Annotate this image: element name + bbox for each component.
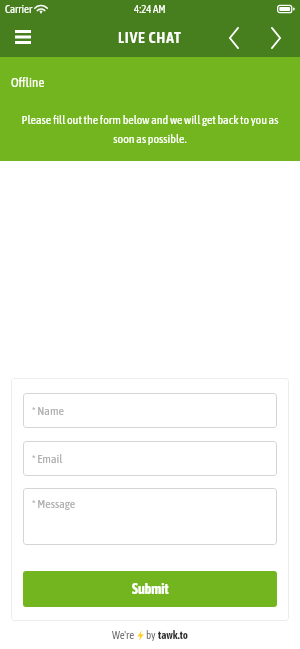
staticText: Carrier	[5, 3, 33, 16]
button[interactable]: * Email	[23, 441, 277, 476]
staticText: Submit	[132, 581, 169, 597]
staticText: * Name	[32, 404, 64, 418]
button[interactable]: Submit	[23, 571, 277, 607]
staticText: Please fill out the form below and we wi…	[16, 113, 284, 145]
staticText: Offline	[11, 75, 45, 90]
staticText: 4:24 AM	[134, 3, 166, 16]
button[interactable]: Next	[257, 18, 294, 57]
staticText: by	[146, 629, 158, 642]
staticText: LIVE CHAT	[118, 29, 182, 47]
button[interactable]: Previous	[215, 18, 252, 57]
button[interactable]: * Name	[23, 393, 277, 428]
staticText: * Message	[32, 497, 76, 511]
staticText: We're	[112, 629, 135, 642]
staticText: tawk.to	[158, 629, 188, 642]
button[interactable]: * Message	[23, 488, 277, 545]
staticText: * Email	[32, 452, 63, 466]
button[interactable]: Menu	[0, 18, 46, 57]
